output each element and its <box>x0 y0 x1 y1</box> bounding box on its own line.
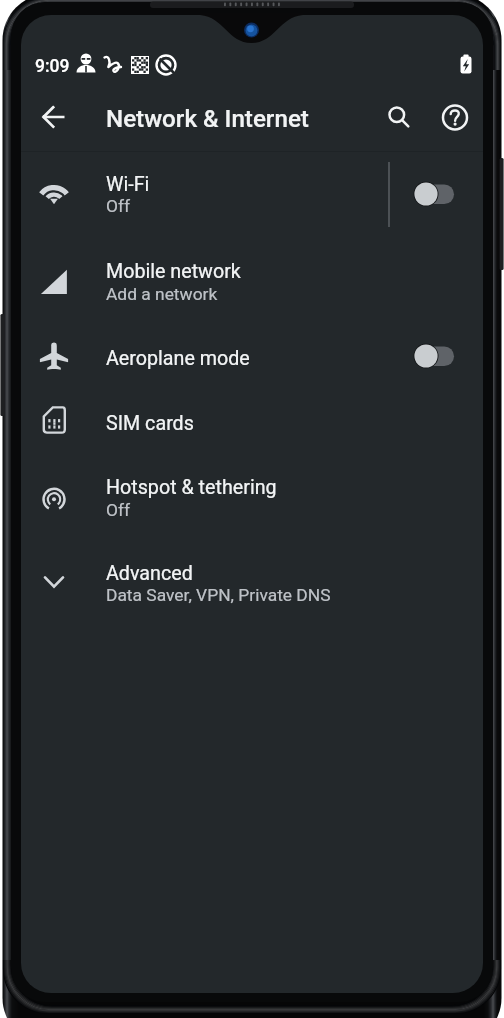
staticText: Add a network <box>106 284 218 304</box>
button[interactable]: Aeroplane mode switch <box>393 332 467 380</box>
staticText: Network & Internet <box>106 105 309 133</box>
button[interactable]: Wi-Fi switch <box>393 170 467 218</box>
button[interactable]: Help <box>437 99 473 135</box>
staticText: 9:09 <box>35 56 70 77</box>
staticText: Mobile network <box>106 260 241 283</box>
staticText: SIM cards <box>106 412 194 435</box>
button[interactable]: Search <box>380 99 416 135</box>
staticText: Data Saver, VPN, Private DNS <box>106 585 331 605</box>
staticText: Wi-Fi <box>106 173 150 196</box>
button[interactable]: SIM cards <box>21 390 483 455</box>
staticText: Hotspot & tethering <box>106 476 277 499</box>
staticText: Advanced <box>106 562 193 585</box>
staticText: Off <box>106 196 131 216</box>
button[interactable]: Advanced <box>21 542 483 628</box>
button[interactable]: Back <box>36 99 72 135</box>
button[interactable]: Aeroplane mode <box>21 326 483 390</box>
staticText: Aeroplane mode <box>106 347 250 370</box>
staticText: Off <box>106 500 131 520</box>
button[interactable]: Wi-Fi <box>21 152 483 239</box>
button[interactable]: Mobile network <box>21 239 483 326</box>
button[interactable]: Hotspot & tethering <box>21 455 483 542</box>
